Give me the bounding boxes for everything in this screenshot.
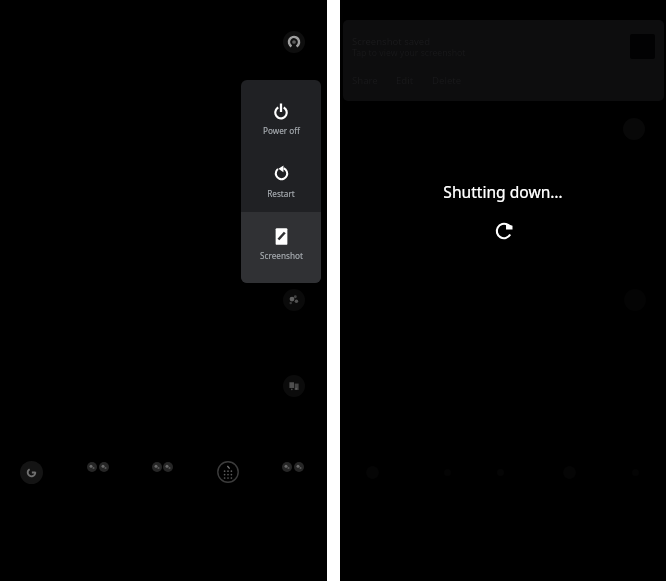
staticText: Restart xyxy=(267,188,295,199)
button[interactable]: App shortcut xyxy=(282,462,292,472)
staticText: Power off xyxy=(263,125,300,136)
button[interactable]: App icon xyxy=(283,31,305,53)
button[interactable]: App shortcut xyxy=(163,462,173,472)
button[interactable]: App icon xyxy=(283,289,305,311)
button[interactable]: App shortcut xyxy=(87,462,97,472)
button[interactable]: Power off xyxy=(241,80,321,146)
button[interactable]: App shortcut xyxy=(152,462,162,472)
other: Restarting xyxy=(495,222,513,240)
button[interactable]: Google xyxy=(20,461,43,484)
button[interactable]: App icon xyxy=(217,461,239,483)
button[interactable]: App shortcut xyxy=(294,462,304,472)
staticText: Screenshot xyxy=(260,250,303,261)
button[interactable]: Restart xyxy=(241,146,321,212)
button[interactable]: Screenshot xyxy=(241,212,321,283)
staticText: Shutting down… xyxy=(340,181,666,202)
button[interactable]: App icon xyxy=(283,375,305,397)
button[interactable]: App shortcut xyxy=(99,462,109,472)
